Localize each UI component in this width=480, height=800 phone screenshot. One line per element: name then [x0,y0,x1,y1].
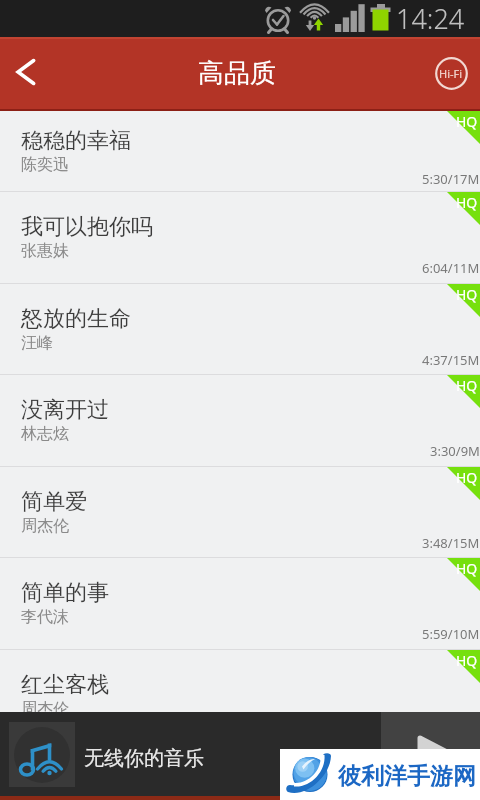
button[interactable]: 稳稳的幸福 [0,111,480,192]
staticText: 我可以抱你吗 [21,213,153,241]
staticText: 6:04/11M [422,259,480,277]
staticText: 3:48/15M [422,534,480,552]
staticText: HQ [456,651,478,670]
staticText: 林志炫 [21,424,69,444]
staticText: 简单爱 [21,488,87,516]
staticText: 没离开过 [21,396,109,424]
staticText: HQ [456,193,478,212]
staticText: 张惠妹 [21,241,69,261]
staticText: 怒放的生命 [21,305,131,333]
staticText: HQ [456,468,478,487]
staticText: 4:37/15M [422,351,480,369]
staticText: 5:59/10M [422,625,480,643]
staticText: 稳稳的幸福 [21,127,131,155]
staticText: 14:24 [396,0,465,37]
button[interactable]: 我可以抱你吗 [0,192,480,284]
staticText: 周杰伦 [21,699,69,712]
staticText: HQ [456,112,478,131]
staticText: Hi-Fi [439,66,463,81]
staticText: 无线你的音乐 [84,746,204,771]
button[interactable]: 简单的事 [0,558,480,650]
staticText: 李代沫 [21,607,69,627]
staticText: 红尘客栈 [21,671,109,699]
button[interactable]: 怒放的生命 [0,284,480,376]
button[interactable]: Hi-Fi [429,51,473,95]
staticText: 3:30/9M [430,442,480,460]
staticText: 5:30/17M [422,170,480,188]
button[interactable]: Back [0,46,56,102]
staticText: 彼利洋手游网 [338,762,476,791]
staticText: HQ [456,285,478,304]
button[interactable]: 没离开过 [0,375,480,467]
staticText: 汪峰 [21,333,53,353]
staticText: 陈奕迅 [21,155,69,175]
button[interactable]: 红尘客栈 [0,650,480,712]
button[interactable]: 简单爱 [0,467,480,559]
button[interactable]: 无线你的音乐 [0,712,381,800]
staticText: 周杰伦 [21,516,69,536]
staticText: 简单的事 [21,579,109,607]
button[interactable]: Play [381,712,480,800]
staticText: 高品质 [198,57,276,90]
staticText: HQ [456,376,478,395]
staticText: HQ [456,559,478,578]
